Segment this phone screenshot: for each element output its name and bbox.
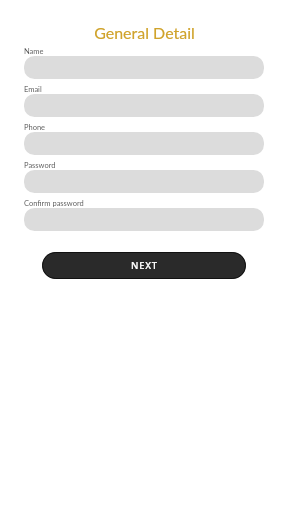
button[interactable]: Phone	[24, 122, 264, 155]
button[interactable]: Confirm password	[24, 198, 264, 231]
staticText: Confirm password	[24, 199, 84, 208]
button[interactable]: NEXT	[42, 252, 246, 279]
button[interactable]: Password	[24, 160, 264, 193]
button[interactable]: Name	[24, 46, 264, 79]
staticText: General Detail	[94, 23, 195, 42]
staticText: NEXT	[131, 259, 159, 272]
staticText: Email	[24, 85, 42, 94]
staticText: Password	[24, 161, 56, 170]
button[interactable]: Email	[24, 84, 264, 117]
staticText: Phone	[24, 123, 46, 132]
staticText: Name	[24, 47, 44, 56]
